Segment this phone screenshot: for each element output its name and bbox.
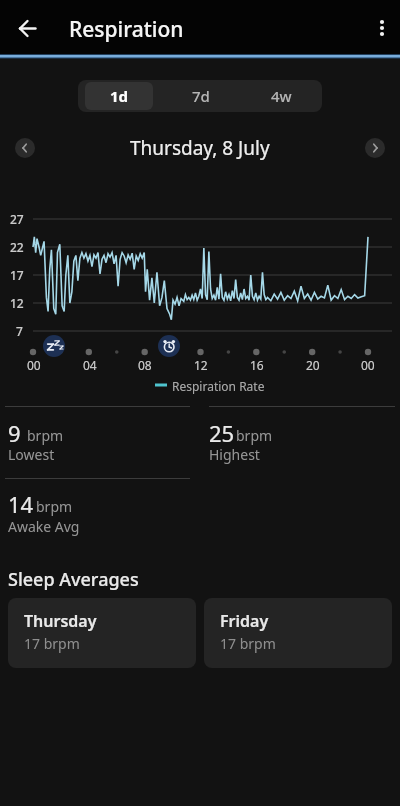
staticText: 25: [209, 418, 235, 448]
staticText: 4w: [271, 86, 292, 106]
button[interactable]: Friday: [204, 598, 392, 668]
button[interactable]: 4w: [241, 80, 322, 112]
staticText: 00: [361, 357, 375, 373]
staticText: 12: [10, 295, 24, 311]
staticText: 27: [10, 211, 24, 227]
staticText: 00: [27, 357, 41, 373]
staticText: 7d: [192, 86, 210, 106]
button[interactable]: [365, 138, 385, 158]
staticText: Thursday, 8 July: [130, 135, 270, 161]
staticText: brpm: [36, 497, 73, 516]
staticText: 17 brpm: [24, 634, 80, 653]
button[interactable]: Thursday: [8, 598, 196, 668]
button[interactable]: [15, 138, 35, 158]
staticText: Lowest: [8, 445, 55, 464]
staticText: Respiration: [69, 15, 184, 44]
staticText: 16: [250, 357, 264, 373]
staticText: 17 brpm: [220, 634, 276, 653]
button[interactable]: 1d: [78, 80, 160, 112]
staticText: 22: [10, 239, 24, 255]
staticText: Thursday: [24, 610, 97, 632]
button[interactable]: 7d: [160, 80, 241, 112]
staticText: Highest: [209, 445, 260, 464]
button[interactable]: [364, 14, 392, 42]
staticText: 9: [8, 418, 21, 448]
staticText: 08: [138, 357, 152, 373]
staticText: 20: [306, 357, 320, 373]
staticText: Awake Avg: [8, 517, 80, 536]
staticText: 12: [194, 357, 208, 373]
staticText: Friday: [220, 610, 269, 632]
staticText: brpm: [236, 426, 273, 445]
staticText: 7: [16, 323, 23, 339]
staticText: brpm: [27, 426, 64, 445]
staticText: 17: [10, 267, 24, 283]
staticText: Sleep Averages: [8, 567, 139, 592]
staticText: 1d: [110, 86, 129, 106]
button[interactable]: [14, 14, 42, 42]
staticText: 14: [8, 489, 34, 519]
staticText: 04: [83, 357, 97, 373]
staticText: Respiration Rate: [172, 378, 265, 394]
